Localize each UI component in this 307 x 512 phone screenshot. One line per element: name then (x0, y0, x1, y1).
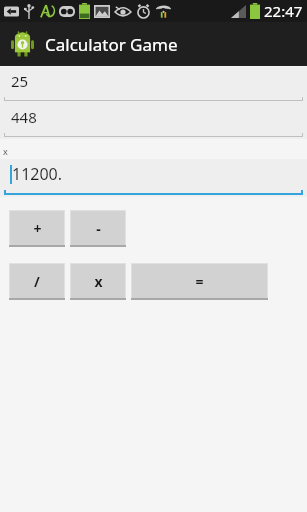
button[interactable]: 11200. (0, 159, 307, 197)
button[interactable]: 25 (0, 67, 307, 103)
staticText: - (96, 219, 101, 238)
staticText: / (34, 272, 40, 291)
staticText: x (94, 272, 103, 291)
staticText: + (33, 219, 42, 238)
staticText: 22:47 (264, 1, 303, 21)
staticText: Calculator Game (45, 33, 178, 56)
staticText: 25 (11, 71, 29, 91)
button[interactable]: / (9, 263, 65, 300)
button[interactable]: = (131, 263, 268, 300)
button[interactable]: Calculator Game (0, 22, 307, 66)
button[interactable]: - (70, 210, 126, 247)
button[interactable]: x (70, 263, 126, 300)
staticText: = (195, 272, 204, 291)
button[interactable]: 448 (0, 103, 307, 139)
staticText: 448 (11, 107, 37, 127)
button[interactable]: + (9, 210, 65, 247)
staticText: x (3, 145, 8, 157)
staticText: 11200. (12, 163, 63, 185)
